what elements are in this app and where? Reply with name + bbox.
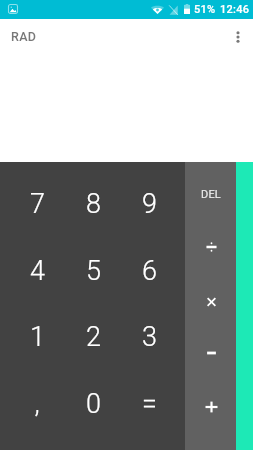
staticText: , — [34, 388, 40, 420]
button[interactable]: 7 — [8, 171, 66, 237]
staticText: 5 — [86, 255, 101, 287]
staticText: 7 — [30, 188, 45, 220]
staticText: 0 — [86, 388, 101, 420]
staticText: 2 — [86, 321, 101, 353]
button[interactable]: Multiply — [185, 275, 236, 328]
button[interactable]: , — [8, 371, 66, 437]
staticText: 51% — [194, 3, 216, 16]
staticText: 4 — [30, 255, 45, 287]
staticText: = — [142, 388, 157, 420]
staticText: DEL — [201, 188, 221, 201]
button[interactable]: 4 — [8, 238, 66, 304]
button[interactable]: 1 — [8, 304, 66, 370]
staticText: 6 — [142, 255, 157, 287]
staticText: 3 — [142, 321, 157, 353]
button[interactable]: 5 — [64, 238, 122, 304]
button[interactable]: Add — [185, 380, 236, 433]
button[interactable]: Subtract — [185, 326, 236, 379]
staticText: RAD — [11, 29, 37, 44]
staticText: 1 — [30, 321, 45, 353]
button[interactable]: RAD — [0, 19, 52, 55]
button[interactable]: Divide — [185, 220, 236, 273]
button[interactable]: 2 — [64, 304, 122, 370]
button[interactable]: 0 — [64, 371, 122, 437]
button[interactable]: = — [120, 371, 178, 437]
button[interactable]: More options — [225, 19, 253, 55]
button[interactable]: Delete — [185, 167, 236, 220]
button[interactable]: 6 — [120, 238, 178, 304]
staticText: 12:46 — [220, 3, 250, 16]
button[interactable]: 3 — [120, 304, 178, 370]
button[interactable]: 8 — [64, 171, 122, 237]
staticText: 9 — [142, 188, 157, 220]
staticText: 8 — [86, 188, 101, 220]
button[interactable]: 9 — [120, 171, 178, 237]
